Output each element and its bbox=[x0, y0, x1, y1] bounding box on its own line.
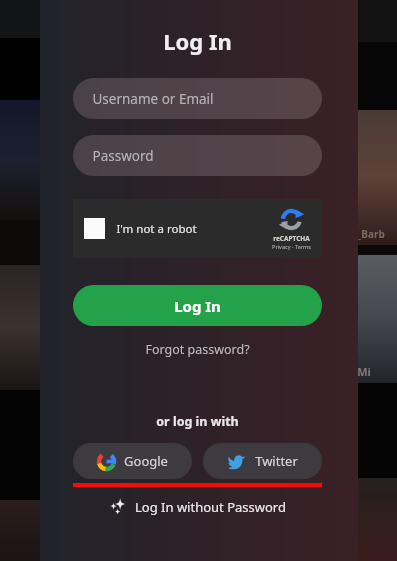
button[interactable]: Username or Email bbox=[73, 78, 322, 119]
button[interactable]: Log In bbox=[73, 285, 322, 326]
staticText: or log in with bbox=[156, 413, 239, 430]
staticText: Forgot password? bbox=[145, 341, 250, 358]
button[interactable]: Forgot password? bbox=[139, 339, 256, 360]
staticText: Username or Email bbox=[92, 90, 214, 108]
staticText: reCAPTCHA bbox=[273, 234, 310, 243]
staticText: I'm not a robot bbox=[116, 221, 197, 237]
staticText: Log In bbox=[174, 296, 221, 316]
button[interactable]: Log In without Password bbox=[101, 496, 294, 518]
staticText: Log In without Password bbox=[135, 498, 286, 516]
staticText: _Barb bbox=[357, 227, 385, 241]
button[interactable]: Twitter bbox=[203, 443, 322, 479]
staticText: Google bbox=[124, 452, 168, 470]
staticText: Password bbox=[92, 147, 154, 165]
button[interactable]: Password bbox=[73, 135, 322, 176]
staticText: Log In bbox=[163, 26, 232, 56]
button[interactable]: Google bbox=[73, 443, 192, 479]
staticText: Twitter bbox=[255, 452, 298, 470]
staticText: Privacy - Terms bbox=[272, 243, 311, 250]
button[interactable]: I'm not a robot checkbox bbox=[73, 199, 322, 258]
staticText: Mi bbox=[357, 364, 371, 379]
